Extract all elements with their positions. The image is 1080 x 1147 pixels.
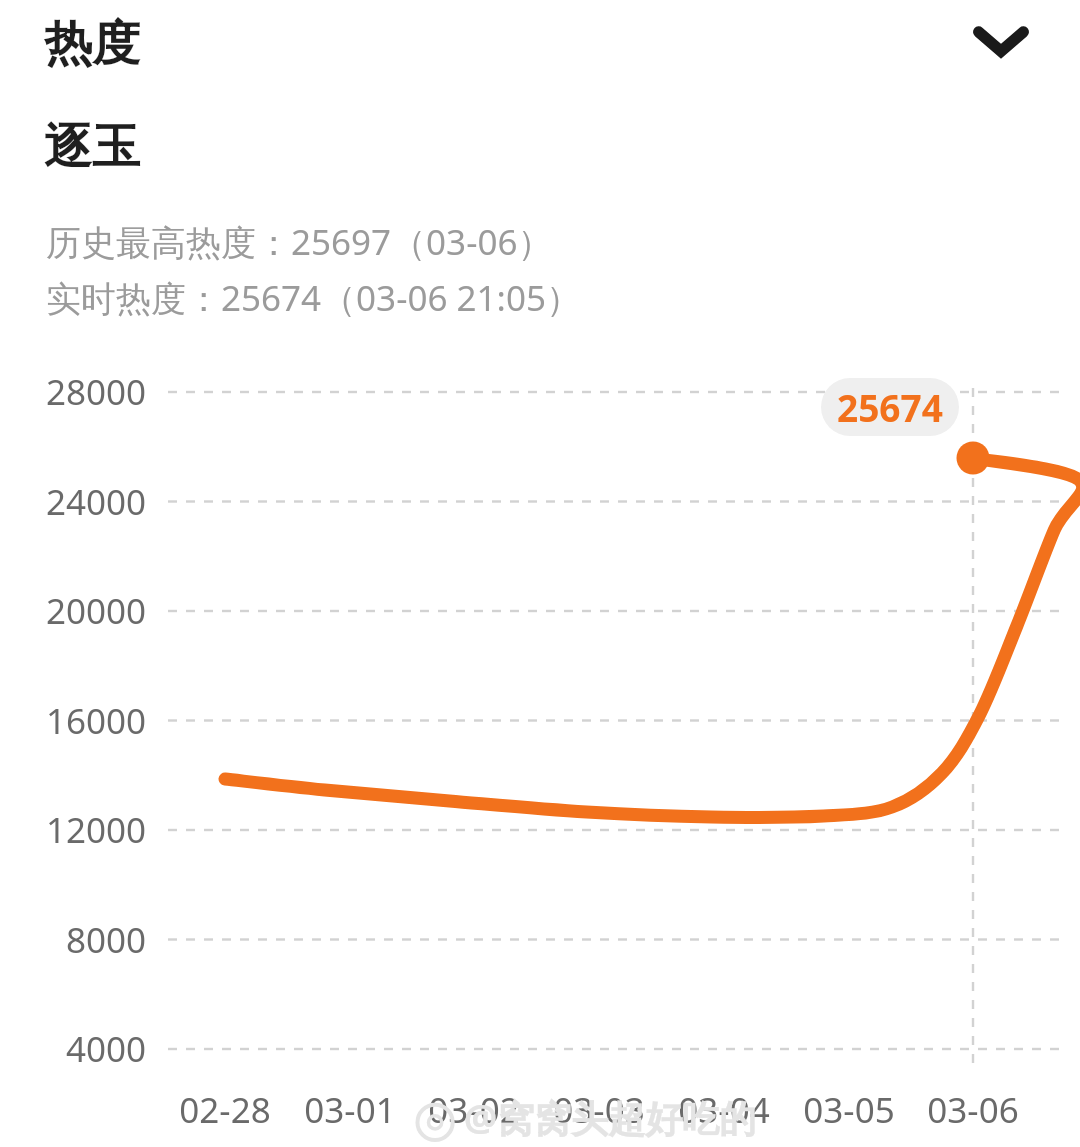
staticText: 历史最高热度：25697（03-06） <box>46 218 553 266</box>
staticText: 28000 <box>45 368 146 416</box>
staticText: 03-04 <box>678 1086 770 1134</box>
button[interactable]: 25674 <box>821 378 959 436</box>
staticText: 03-05 <box>803 1086 895 1134</box>
staticText: 4000 <box>65 1025 146 1073</box>
staticText: 20000 <box>45 587 146 635</box>
staticText: 热度 <box>44 14 140 74</box>
staticText: 25674 <box>837 382 943 432</box>
staticText: 16000 <box>45 697 146 745</box>
button[interactable]: Collapse <box>955 4 1047 80</box>
staticText: @窝窝头超好吃的 <box>464 1092 757 1143</box>
staticText: 02-28 <box>179 1086 271 1134</box>
staticText: 24000 <box>45 478 146 526</box>
staticText: 8000 <box>65 916 146 964</box>
staticText: 03-02 <box>428 1086 520 1134</box>
staticText: 03-01 <box>304 1086 396 1134</box>
staticText: 03-06 <box>927 1086 1019 1134</box>
staticText: 03-03 <box>553 1086 645 1134</box>
staticText: 12000 <box>45 806 146 854</box>
staticText: 实时热度：25674（03-06 21:05） <box>46 274 582 322</box>
staticText: 逐玉 <box>44 117 140 177</box>
